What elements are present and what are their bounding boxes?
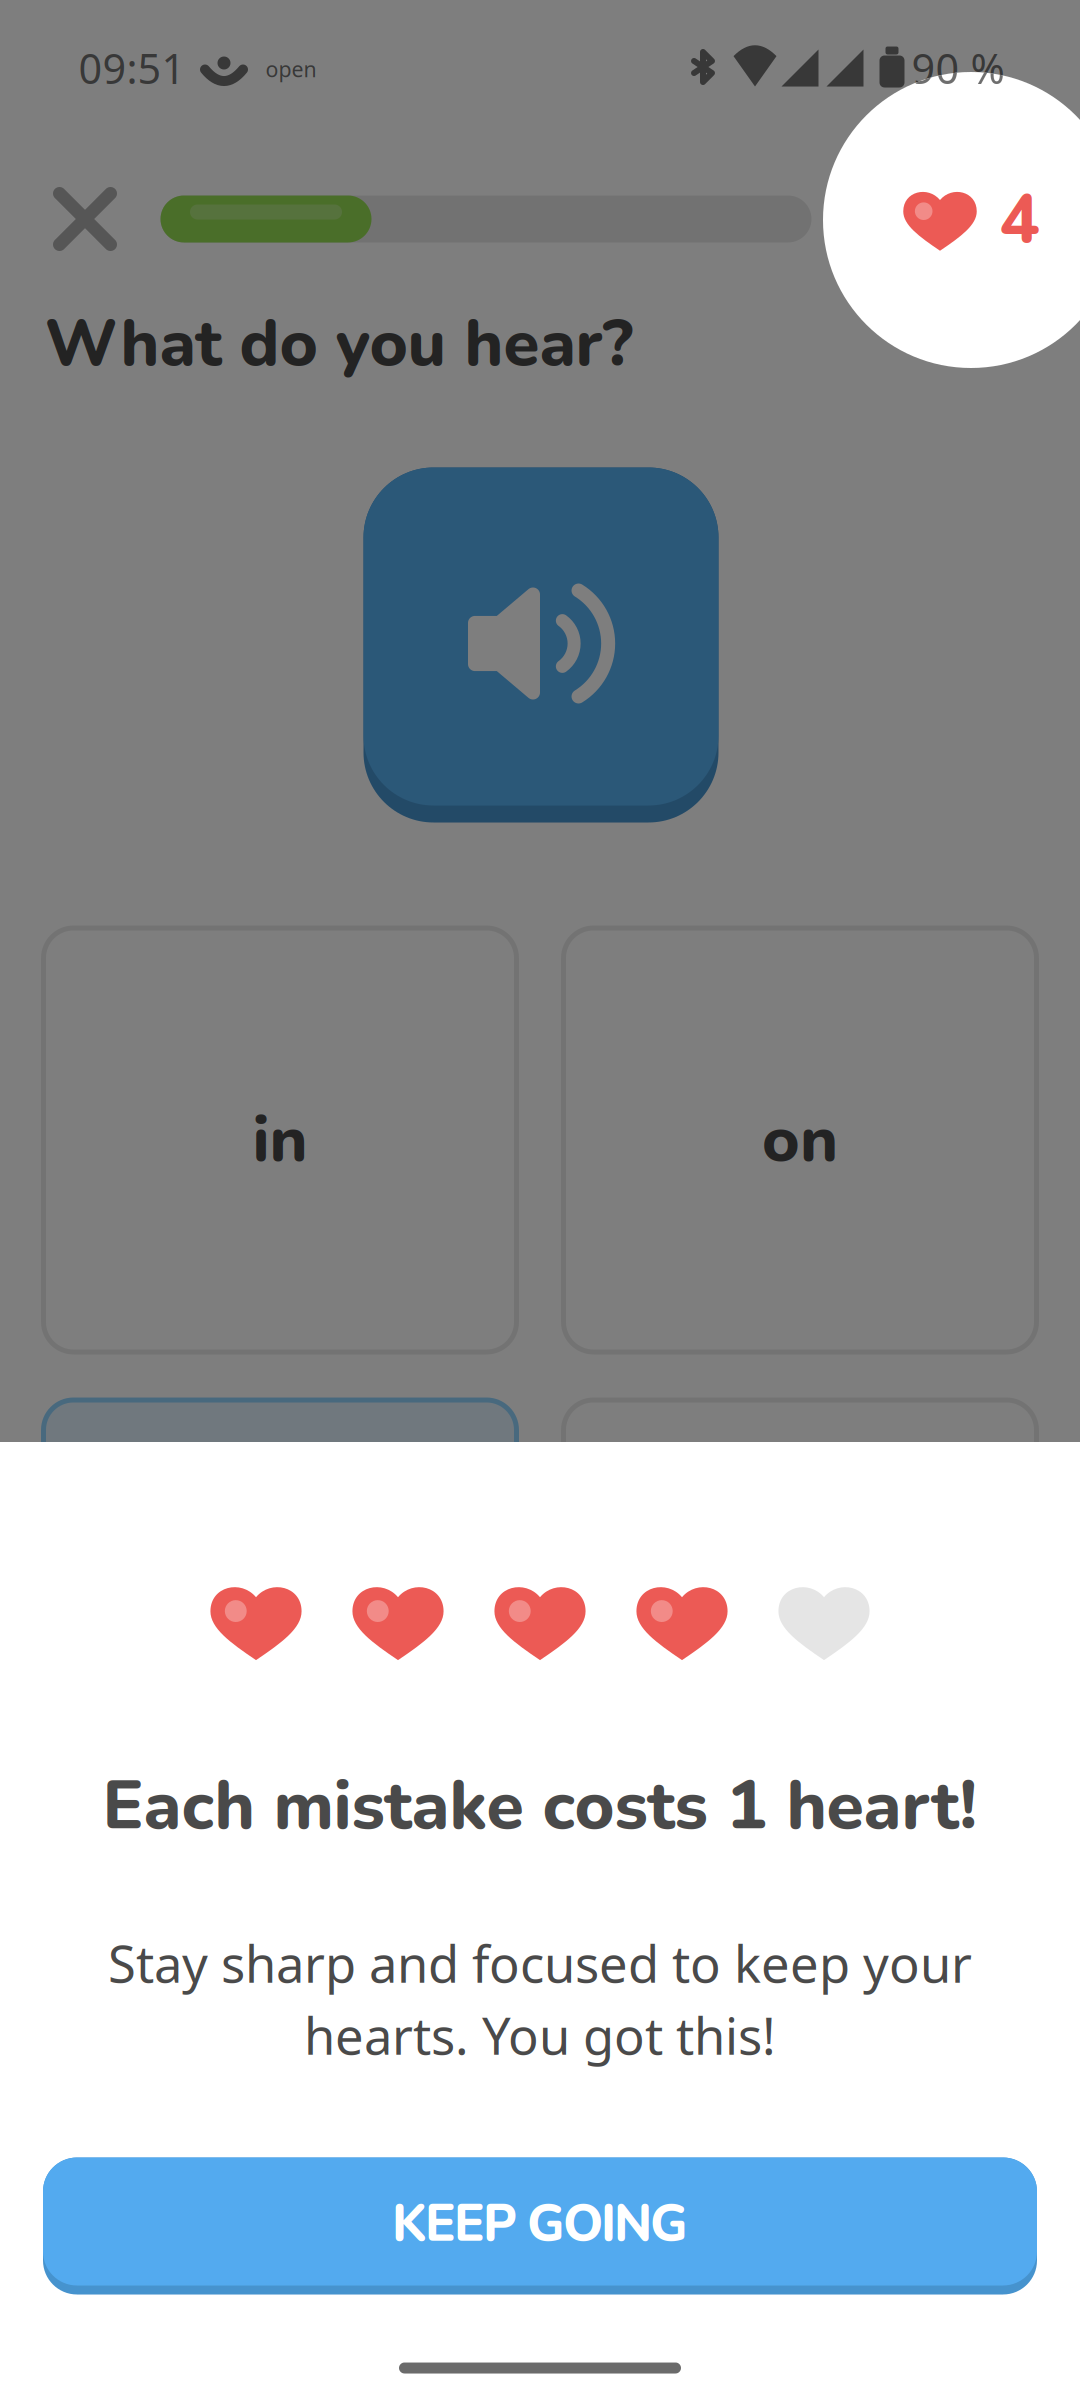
staticText: 4 — [1002, 173, 1042, 264]
staticText: 90 % — [911, 40, 1004, 96]
button[interactable]: Hearts remaining: 4 — [905, 173, 1042, 264]
staticText: to — [768, 1568, 832, 1656]
staticText: 09:51 — [78, 40, 185, 96]
staticText: hearts. You got this! — [304, 2000, 776, 2069]
staticText: 90 % — [911, 40, 1004, 96]
staticText: at — [249, 1568, 311, 1656]
staticText: What do you hear? — [44, 299, 633, 388]
button[interactable]: to — [563, 1400, 1036, 1824]
staticText: Each mistake costs 1 heart! — [102, 1760, 977, 1852]
staticText: 4 — [999, 174, 1039, 265]
button[interactable]: at — [43, 1400, 516, 1824]
staticText: KEEP GOING — [392, 2189, 688, 2259]
button[interactable]: Hearts remaining: 4 — [823, 72, 1080, 368]
staticText: Stay sharp and focused to keep your — [108, 1928, 972, 1997]
staticText: open — [265, 54, 316, 84]
staticText: on — [762, 1096, 838, 1184]
button[interactable]: KEEP GOING — [43, 2157, 1037, 2294]
button[interactable]: on — [563, 928, 1036, 1352]
button[interactable]: Close lesson — [37, 171, 132, 266]
button[interactable]: Play audio — [363, 467, 718, 822]
button[interactable]: in — [43, 928, 516, 1352]
staticText: in — [252, 1096, 307, 1184]
